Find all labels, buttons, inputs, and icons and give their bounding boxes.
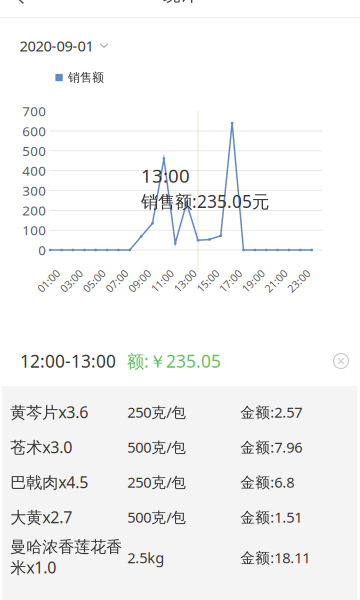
staticText: 03:00 xyxy=(58,274,85,288)
staticText: 400 xyxy=(22,162,46,179)
staticText: 金额:7.96 xyxy=(240,437,302,457)
staticText: 苍术x3.0 xyxy=(10,436,72,458)
staticText: 大黄x2.7 xyxy=(10,506,72,528)
staticText: 23:00 xyxy=(285,274,312,288)
staticText: 500克/包 xyxy=(127,507,186,527)
button[interactable]: 2020-09-01 xyxy=(13,29,114,62)
button[interactable]: 统计 xyxy=(163,0,197,19)
staticText: 0 xyxy=(38,241,46,259)
staticText: 05:00 xyxy=(80,274,107,288)
staticText: 17:00 xyxy=(217,274,244,288)
button[interactable]: Back xyxy=(0,0,360,17)
staticText: 11:00 xyxy=(149,274,176,288)
staticText: 金额:2.57 xyxy=(240,402,302,422)
staticText: 200 xyxy=(22,201,46,219)
staticText: 额:￥235.05 xyxy=(127,349,221,372)
staticText: 500 xyxy=(22,142,46,160)
staticText: 13:00 xyxy=(141,163,190,188)
staticText: 15:00 xyxy=(194,274,221,288)
staticText: 700 xyxy=(22,102,46,120)
staticText: 销售额 xyxy=(68,70,104,85)
staticText: 2020-09-01 xyxy=(19,36,93,55)
staticText: 100 xyxy=(22,221,46,239)
staticText: 13:00 xyxy=(171,274,198,288)
staticText: 300 xyxy=(22,182,46,199)
button[interactable]: 12:00-13:00 xyxy=(0,336,360,386)
staticText: 曼哈浓香莲花香米x1.0 xyxy=(10,537,122,578)
staticText: 01:00 xyxy=(35,274,62,288)
staticText: 销售额:235.05元 xyxy=(141,190,269,213)
staticText: 21:00 xyxy=(262,274,289,288)
staticText: 金额:1.51 xyxy=(240,507,302,527)
staticText: 09:00 xyxy=(126,274,153,288)
staticText: 07:00 xyxy=(103,274,130,288)
staticText: 250克/包 xyxy=(127,402,186,422)
staticText: 巴戟肉x4.5 xyxy=(10,471,88,493)
staticText: 金额:6.8 xyxy=(240,472,294,492)
staticText: 统计 xyxy=(163,0,197,6)
staticText: 2.5kg xyxy=(127,548,164,567)
staticText: 黄芩片x3.6 xyxy=(10,401,88,423)
staticText: 金额:18.11 xyxy=(240,548,310,567)
staticText: 500克/包 xyxy=(127,437,186,457)
staticText: 19:00 xyxy=(240,274,267,288)
staticText: 250克/包 xyxy=(127,472,186,492)
staticText: 12:00-13:00 xyxy=(20,349,116,372)
staticText: 600 xyxy=(22,122,46,140)
